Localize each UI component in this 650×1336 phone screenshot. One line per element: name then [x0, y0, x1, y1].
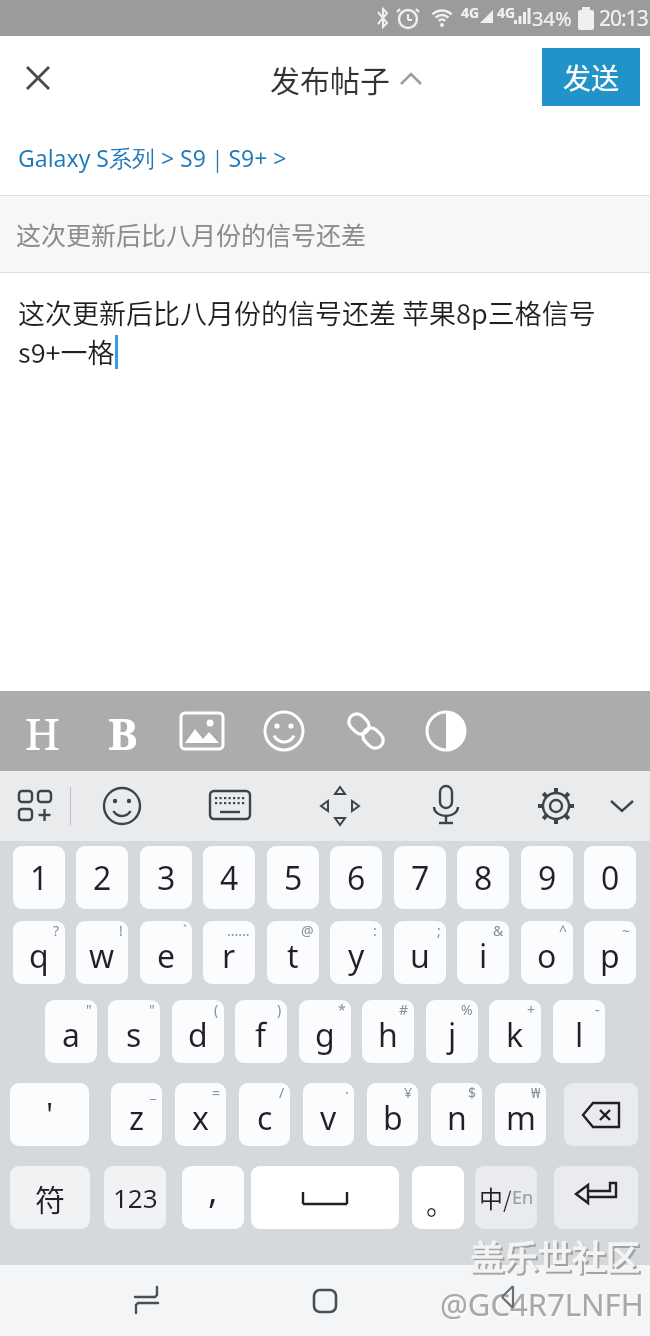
button[interactable]: v [303, 1083, 354, 1146]
button[interactable] [297, 1276, 353, 1326]
button[interactable]: f [235, 1000, 287, 1063]
staticText: , [208, 1166, 218, 1214]
button[interactable]: o [521, 921, 573, 984]
button[interactable]: 中 [475, 1166, 537, 1229]
button[interactable]: u [394, 921, 446, 984]
staticText: 34% [532, 5, 572, 32]
button[interactable]: 0 [584, 846, 636, 909]
button[interactable]: 发布帖子 [270, 57, 422, 100]
staticText: ) [277, 1000, 282, 1019]
button[interactable]: 6 [330, 846, 382, 909]
button[interactable] [420, 780, 472, 832]
button[interactable]: g [299, 1000, 351, 1063]
button[interactable]: r [203, 921, 255, 984]
button[interactable]: l [553, 1000, 605, 1063]
button[interactable]: m [495, 1083, 546, 1146]
button[interactable] [10, 780, 62, 832]
staticText: 3 [157, 856, 176, 900]
staticText: ? [53, 921, 60, 940]
staticText: ; [437, 921, 441, 940]
button[interactable] [420, 705, 472, 757]
staticText: 5 [284, 856, 303, 900]
staticText: 0 [601, 856, 620, 900]
button[interactable]: , [182, 1166, 244, 1229]
staticText: 9 [538, 856, 557, 900]
button[interactable] [251, 1166, 399, 1229]
button[interactable]: j [426, 1000, 478, 1063]
staticText: 符 [35, 1176, 65, 1219]
button[interactable]: B [97, 703, 149, 755]
button[interactable]: s [108, 1000, 160, 1063]
button[interactable]: c [239, 1083, 290, 1146]
button[interactable]: b [367, 1083, 418, 1146]
staticText: v [320, 1096, 337, 1140]
staticText: j [448, 1013, 457, 1057]
button[interactable]: ' [10, 1083, 89, 1146]
staticText: 1 [30, 856, 49, 900]
staticText: ₩ [531, 1083, 541, 1102]
staticText: n [447, 1096, 467, 1140]
button[interactable]: 3 [140, 846, 192, 909]
button[interactable]: 符 [10, 1166, 90, 1229]
button[interactable]: H [16, 703, 68, 755]
button[interactable]: n [431, 1083, 482, 1146]
button[interactable]: 发送 [542, 48, 640, 106]
button[interactable]: 7 [394, 846, 446, 909]
staticText: ~ [622, 921, 631, 940]
staticText: / [503, 1182, 512, 1214]
staticText: @ [301, 921, 314, 940]
staticText: - [595, 1000, 600, 1019]
button[interactable]: d [172, 1000, 224, 1063]
button[interactable] [564, 1083, 638, 1146]
button[interactable]: a [45, 1000, 97, 1063]
button[interactable]: 1 [13, 846, 65, 909]
staticText: 2 [93, 856, 112, 900]
button[interactable] [530, 780, 582, 832]
button[interactable] [258, 705, 310, 757]
button[interactable] [490, 1276, 546, 1326]
button[interactable]: 4 [203, 846, 255, 909]
button[interactable]: p [584, 921, 636, 984]
button[interactable]: i [457, 921, 509, 984]
button[interactable]: q [13, 921, 65, 984]
button[interactable]: 8 [457, 846, 509, 909]
staticText: 20:13 [599, 4, 648, 33]
staticText: : [373, 921, 377, 940]
button[interactable]: 5 [267, 846, 319, 909]
button[interactable] [96, 780, 148, 832]
staticText: $ [468, 1083, 477, 1102]
button[interactable]: 这次更新后比八月份的信号还差 [0, 196, 650, 272]
button[interactable]: t [267, 921, 319, 984]
button[interactable]: k [489, 1000, 541, 1063]
button[interactable]: y [330, 921, 382, 984]
button[interactable]: 。 [412, 1166, 464, 1229]
button[interactable] [554, 1166, 638, 1229]
button[interactable]: w [76, 921, 128, 984]
staticText: ' [46, 1093, 54, 1137]
button[interactable]: z [111, 1083, 162, 1146]
button[interactable] [176, 705, 228, 757]
staticText: + [527, 1000, 536, 1019]
staticText: w [89, 934, 115, 978]
button[interactable]: e [140, 921, 192, 984]
staticText: 盖乐世社区 [472, 1233, 642, 1282]
staticText: @GC4R7LNFH [440, 1283, 644, 1325]
button[interactable]: 这次更新后比八月份的信号还差 苹果8p三格信号 [18, 293, 650, 691]
button[interactable]: 123 [104, 1166, 166, 1229]
button[interactable] [204, 780, 256, 832]
button[interactable]: Galaxy S系列 > S9｜S9+ > [0, 120, 650, 195]
button[interactable]: h [362, 1000, 414, 1063]
staticText: 4G [497, 3, 516, 22]
staticText: ^ [559, 921, 568, 940]
button[interactable]: 2 [76, 846, 128, 909]
button[interactable] [120, 1276, 176, 1326]
button[interactable]: x [175, 1083, 226, 1146]
button[interactable]: 9 [521, 846, 573, 909]
staticText: z [129, 1096, 145, 1140]
staticText: s9+一格 [18, 332, 115, 371]
button[interactable] [10, 50, 66, 106]
button[interactable] [340, 705, 392, 757]
button[interactable] [600, 787, 644, 825]
staticText: ` [183, 921, 187, 940]
button[interactable] [314, 780, 366, 832]
